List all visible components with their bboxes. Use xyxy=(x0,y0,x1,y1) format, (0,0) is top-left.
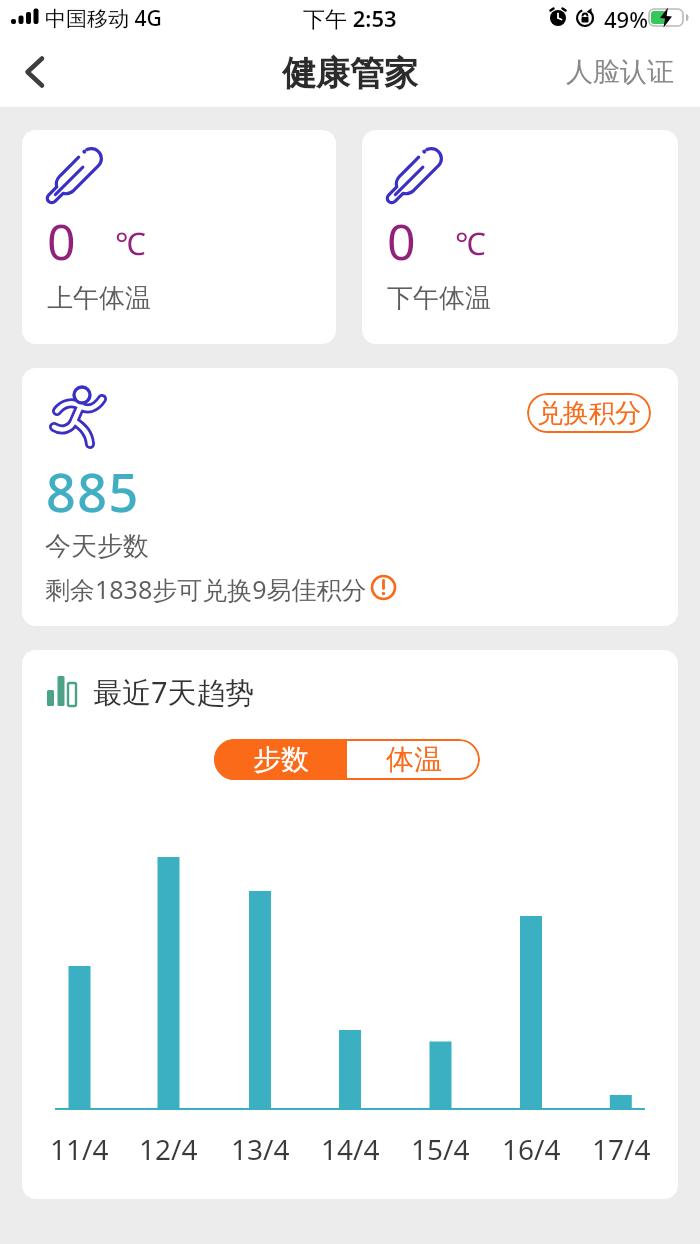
staticText: ℃ xyxy=(455,222,486,264)
staticText: 0 xyxy=(47,207,76,275)
staticText: 0 xyxy=(387,207,416,275)
staticText: 上午体温 xyxy=(47,282,151,315)
staticText: 下午体温 xyxy=(387,282,491,315)
button[interactable] xyxy=(14,50,58,94)
staticText: 步数 xyxy=(253,742,309,777)
staticText: 12/4 xyxy=(139,1130,198,1168)
staticText: ℃ xyxy=(115,222,146,264)
staticText: 17/4 xyxy=(592,1130,651,1168)
button[interactable]: 人脸认证 xyxy=(558,52,682,92)
button[interactable]: 兑换积分 xyxy=(527,393,651,433)
staticText: 13/4 xyxy=(231,1130,290,1168)
staticText: 15/4 xyxy=(411,1130,470,1168)
staticText: 中国移动 4G xyxy=(45,4,162,33)
staticText: 体温 xyxy=(386,742,442,777)
staticText: 今天步数 xyxy=(45,530,149,563)
staticText: 14/4 xyxy=(321,1130,380,1168)
staticText: 健康管家 xyxy=(282,52,418,95)
staticText: 885 xyxy=(46,456,140,527)
staticText: 人脸认证 xyxy=(566,55,674,89)
staticText: 下午 2:53 xyxy=(303,3,397,33)
staticText: 最近7天趋势 xyxy=(93,672,255,712)
button[interactable]: 0 xyxy=(362,130,678,344)
staticText: 11/4 xyxy=(50,1130,109,1168)
button[interactable]: 步数 xyxy=(214,739,347,780)
staticText: 49% xyxy=(604,4,648,34)
button[interactable]: 体温 xyxy=(347,739,480,780)
staticText: 兑换积分 xyxy=(537,397,641,430)
staticText: 剩余1838步可兑换9易佳积分 xyxy=(45,572,367,606)
staticText: 16/4 xyxy=(502,1130,561,1168)
button[interactable]: 0 xyxy=(22,130,336,344)
